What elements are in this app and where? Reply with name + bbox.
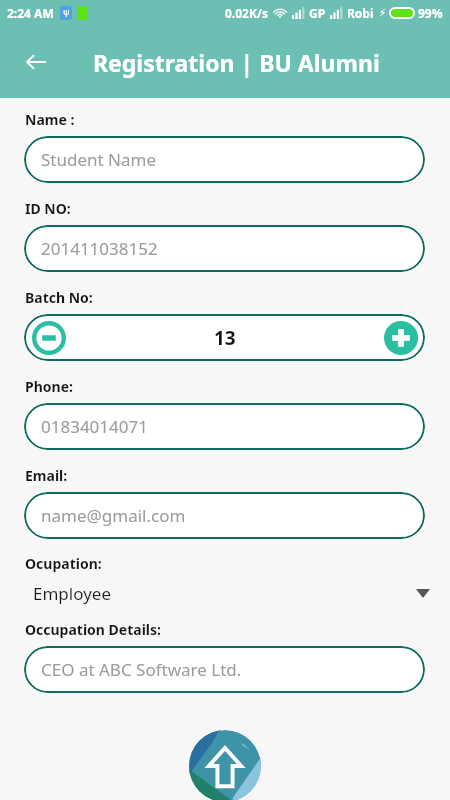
button[interactable]: Employee <box>25 574 430 612</box>
staticText: Email: <box>25 466 68 485</box>
staticText: 01834014071 <box>41 415 148 438</box>
staticText: Batch No: <box>25 288 93 307</box>
staticText: CEO at ABC Software Ltd. <box>41 658 242 681</box>
button[interactable]: Student Name <box>24 136 425 183</box>
staticText: ⚡ <box>379 7 387 19</box>
staticText: 201411038152 <box>41 237 158 260</box>
staticText: 0.02K/s <box>225 5 268 21</box>
staticText: ID NO: <box>25 199 71 218</box>
button[interactable]: Decrease batch number <box>30 319 68 357</box>
staticText: Ψ <box>63 8 70 19</box>
staticText: 2:24 AM <box>7 5 54 21</box>
staticText: GP <box>309 5 326 21</box>
button[interactable]: CEO at ABC Software Ltd. <box>24 646 425 693</box>
staticText: Employee <box>33 582 111 605</box>
button[interactable]: Increase batch number <box>382 319 420 357</box>
staticText: Ocupation: <box>25 554 102 573</box>
staticText: 13 <box>214 325 236 351</box>
staticText: name@gmail.com <box>41 504 186 527</box>
button[interactable]: 201411038152 <box>24 225 425 272</box>
staticText: Robi <box>347 5 374 21</box>
staticText: Phone: <box>25 377 73 396</box>
button[interactable]: Submit <box>189 730 261 800</box>
button[interactable]: name@gmail.com <box>24 492 425 539</box>
button[interactable]: Back <box>12 38 60 86</box>
staticText: 99% <box>418 5 443 21</box>
staticText: Name : <box>25 110 75 129</box>
staticText: Student Name <box>41 148 157 171</box>
button[interactable]: 01834014071 <box>24 403 425 450</box>
staticText: Occupation Details: <box>25 620 161 639</box>
staticText: Registration | BU Alumni <box>93 47 380 78</box>
